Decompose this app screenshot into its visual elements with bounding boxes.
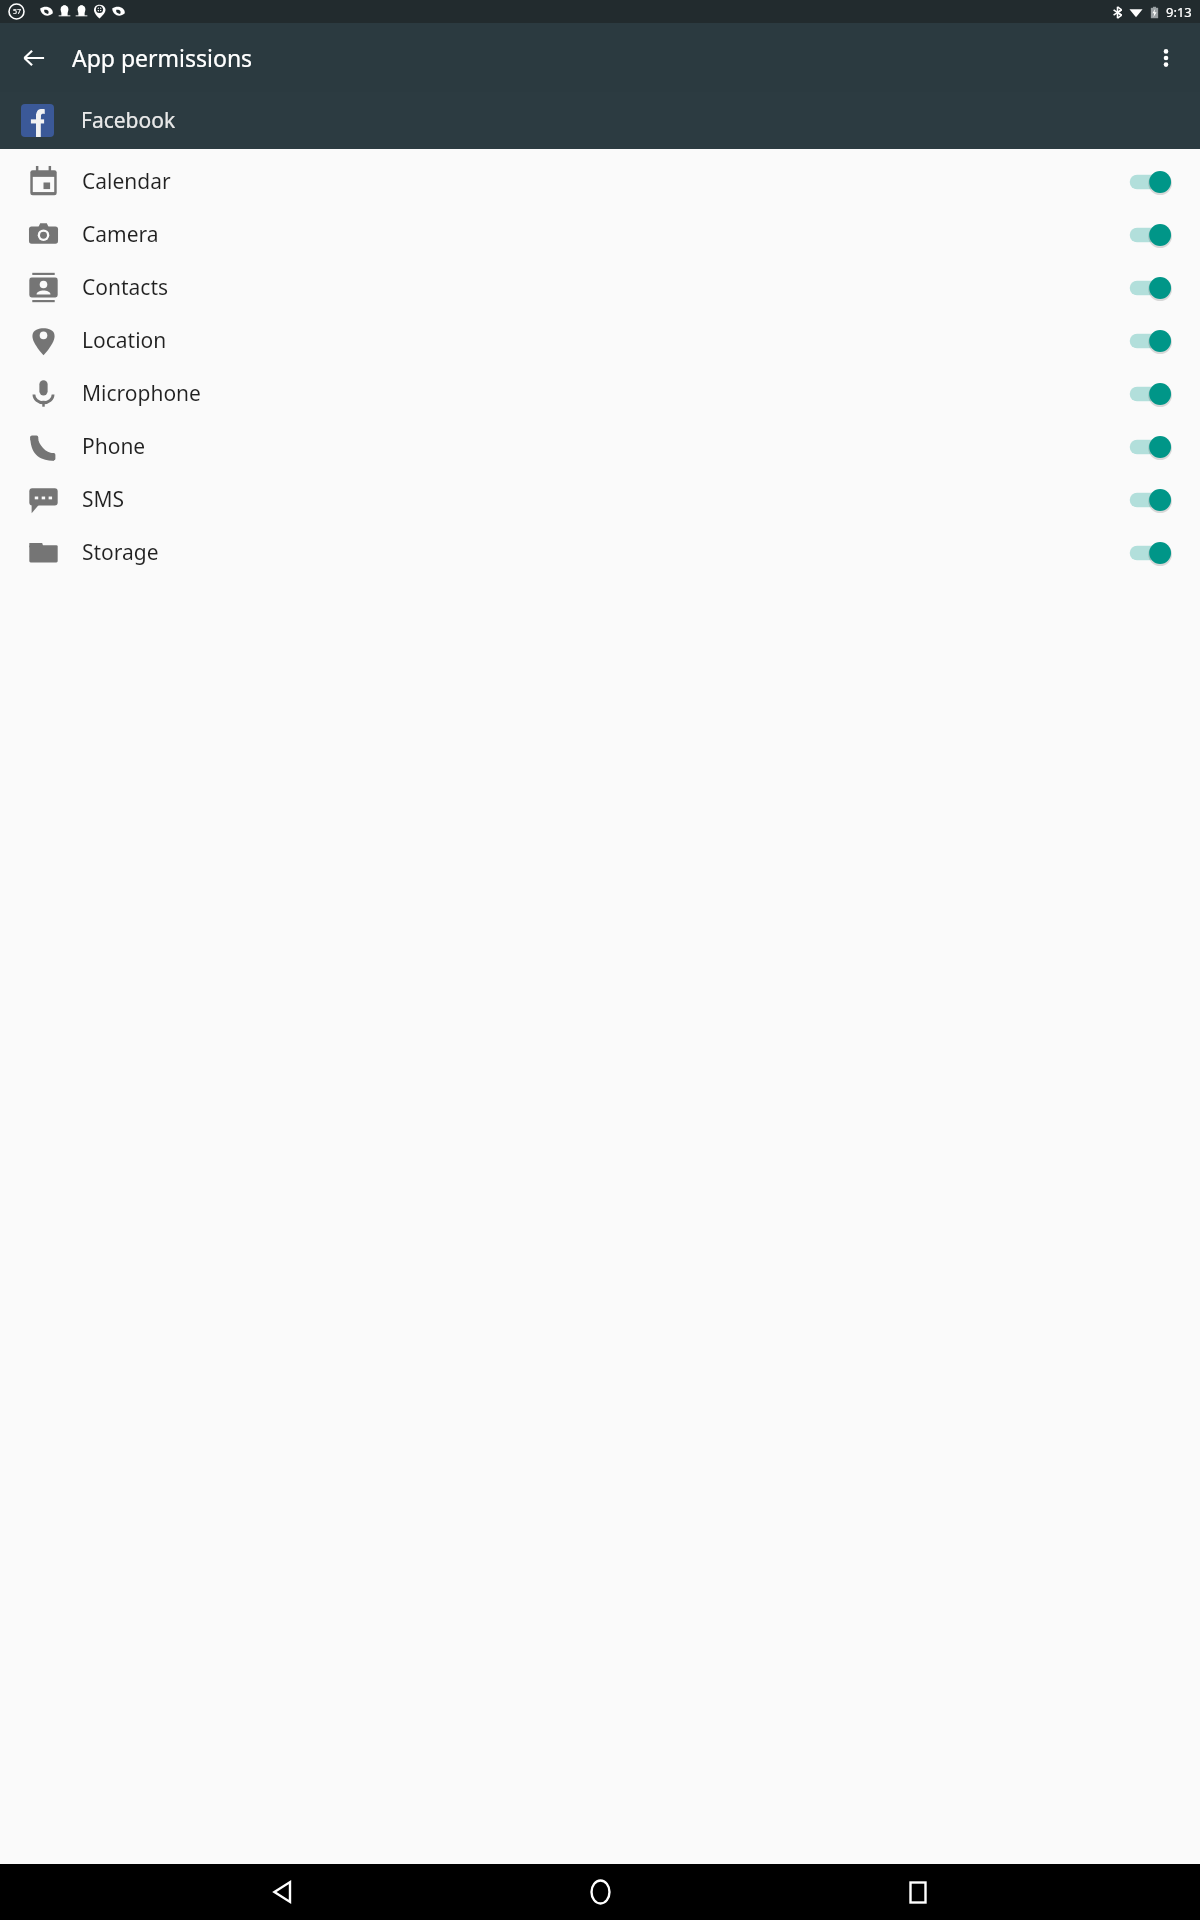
button[interactable]: Phone	[0, 420, 1200, 473]
button[interactable]: SMS	[0, 473, 1200, 526]
button[interactable]: Contacts permission toggle	[1114, 264, 1186, 312]
button[interactable]: Location permission toggle	[1114, 317, 1186, 365]
staticText: SMS	[82, 485, 1114, 514]
button[interactable]: Back	[10, 34, 58, 82]
button[interactable]: Contacts	[0, 261, 1200, 314]
button[interactable]: Camera	[0, 208, 1200, 261]
staticText: Location	[82, 326, 1114, 355]
button[interactable]: Storage	[0, 526, 1200, 579]
staticText: App permissions	[72, 42, 253, 73]
button[interactable]: Storage permission toggle	[1114, 529, 1186, 577]
button[interactable]: More options	[1142, 34, 1190, 82]
button[interactable]: Calendar	[0, 155, 1200, 208]
staticText: Phone	[82, 432, 1114, 461]
button[interactable]: Location	[0, 314, 1200, 367]
staticText: Camera	[82, 220, 1114, 249]
staticText: Microphone	[82, 379, 1114, 408]
staticText: 9:13	[1166, 3, 1192, 21]
button[interactable]: Facebook	[0, 92, 1200, 149]
button[interactable]: Home	[564, 1864, 636, 1920]
button[interactable]: Phone permission toggle	[1114, 423, 1186, 471]
staticText: Calendar	[82, 167, 1114, 196]
staticText: Contacts	[82, 273, 1114, 302]
button[interactable]: Camera permission toggle	[1114, 211, 1186, 259]
button[interactable]: Recent apps	[882, 1864, 954, 1920]
button[interactable]: Back	[246, 1864, 318, 1920]
button[interactable]: Microphone	[0, 367, 1200, 420]
staticText: Facebook	[81, 106, 176, 135]
button[interactable]: Calendar permission toggle	[1114, 158, 1186, 206]
button[interactable]: Microphone permission toggle	[1114, 370, 1186, 418]
button[interactable]: SMS permission toggle	[1114, 476, 1186, 524]
staticText: Storage	[82, 538, 1114, 567]
staticText: 57	[13, 7, 22, 17]
